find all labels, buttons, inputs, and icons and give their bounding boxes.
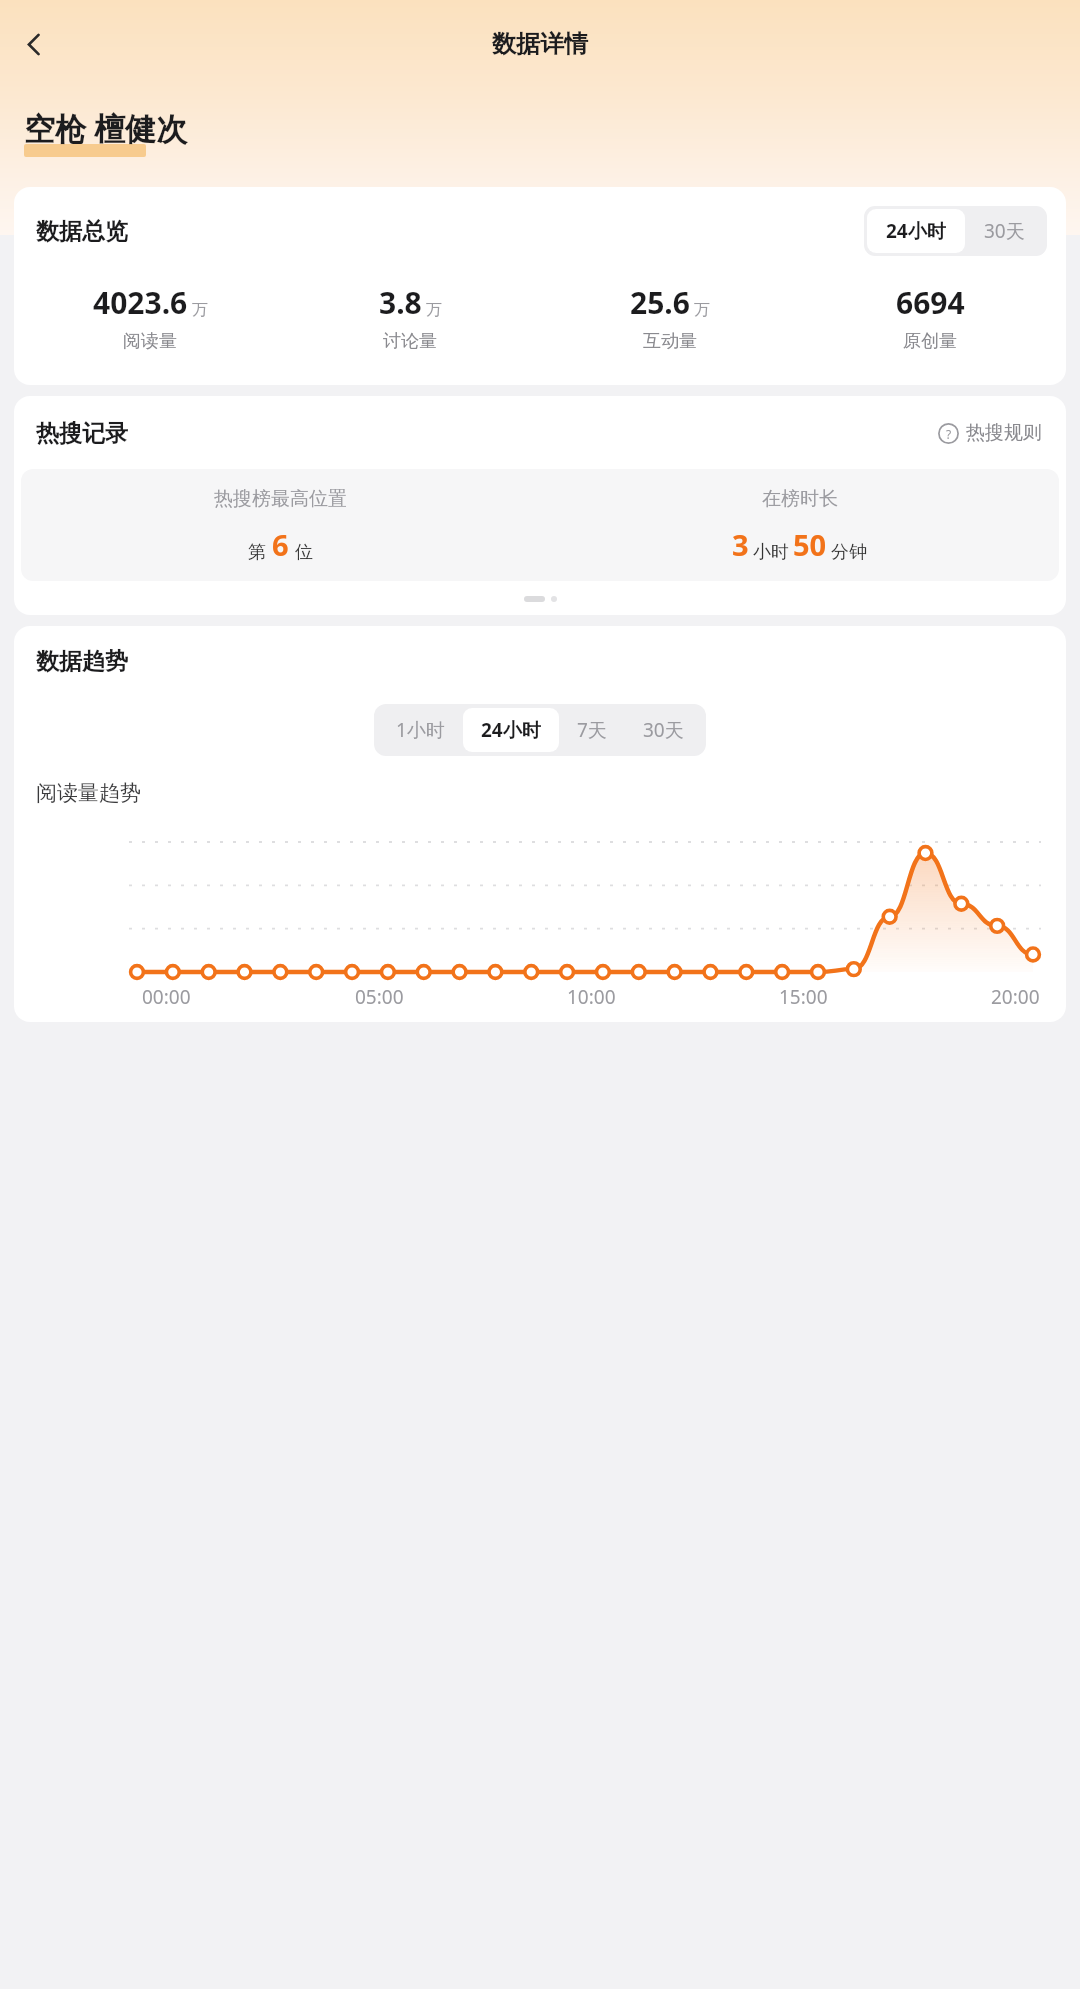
staticText: 6 [272,525,289,564]
staticText: 热搜规则 [966,421,1042,445]
staticText: 空枪 檀健次 [24,107,188,149]
staticText: 第 [248,541,266,564]
staticText: 20:00 [991,984,1040,1010]
staticText: 位 [295,541,313,564]
staticText: 10:00 [567,984,616,1010]
staticText: 阅读量趋势 [36,780,141,806]
staticText: 24小时 [886,218,946,244]
staticText: 讨论量 [383,330,437,353]
button[interactable]: Back [5,16,61,72]
staticText: 15:00 [779,984,828,1010]
staticText: ? [946,426,952,442]
staticText: 3 [732,525,749,564]
staticText: 05:00 [355,984,404,1010]
staticText: 3.8 [379,282,422,323]
staticText: 在榜时长 [762,487,838,511]
button[interactable]: 24小时 [867,209,965,253]
staticText: 7天 [577,717,607,743]
staticText: 00:00 [142,984,191,1010]
button[interactable]: 30天 [625,708,702,752]
staticText: 数据详情 [492,29,588,59]
staticText: 热搜记录 [36,419,128,448]
staticText: 数据总览 [36,217,128,246]
staticText: 6694 [896,282,965,323]
staticText: 万 [694,300,710,320]
button[interactable]: 30天 [965,209,1044,253]
staticText: 分钟 [831,541,867,564]
staticText: 30天 [643,717,684,743]
staticText: 1小时 [396,717,445,743]
staticText: 互动量 [643,330,697,353]
staticText: 阅读量 [123,330,177,353]
staticText: 热搜榜最高位置 [214,487,347,511]
staticText: 24小时 [481,717,541,743]
button[interactable]: 24小时 [463,708,559,752]
staticText: 30天 [984,218,1025,244]
staticText: 4023.6 [93,282,188,323]
button[interactable]: 1小时 [378,708,463,752]
button[interactable]: ? [934,417,1046,449]
staticText: 数据趋势 [36,647,128,676]
button[interactable]: 7天 [559,708,625,752]
staticText: 万 [426,300,442,320]
staticText: 原创量 [903,330,957,353]
staticText: 万 [192,300,208,320]
staticText: 25.6 [630,282,690,323]
staticText: 小时 [753,541,789,564]
staticText: 50 [793,525,827,564]
